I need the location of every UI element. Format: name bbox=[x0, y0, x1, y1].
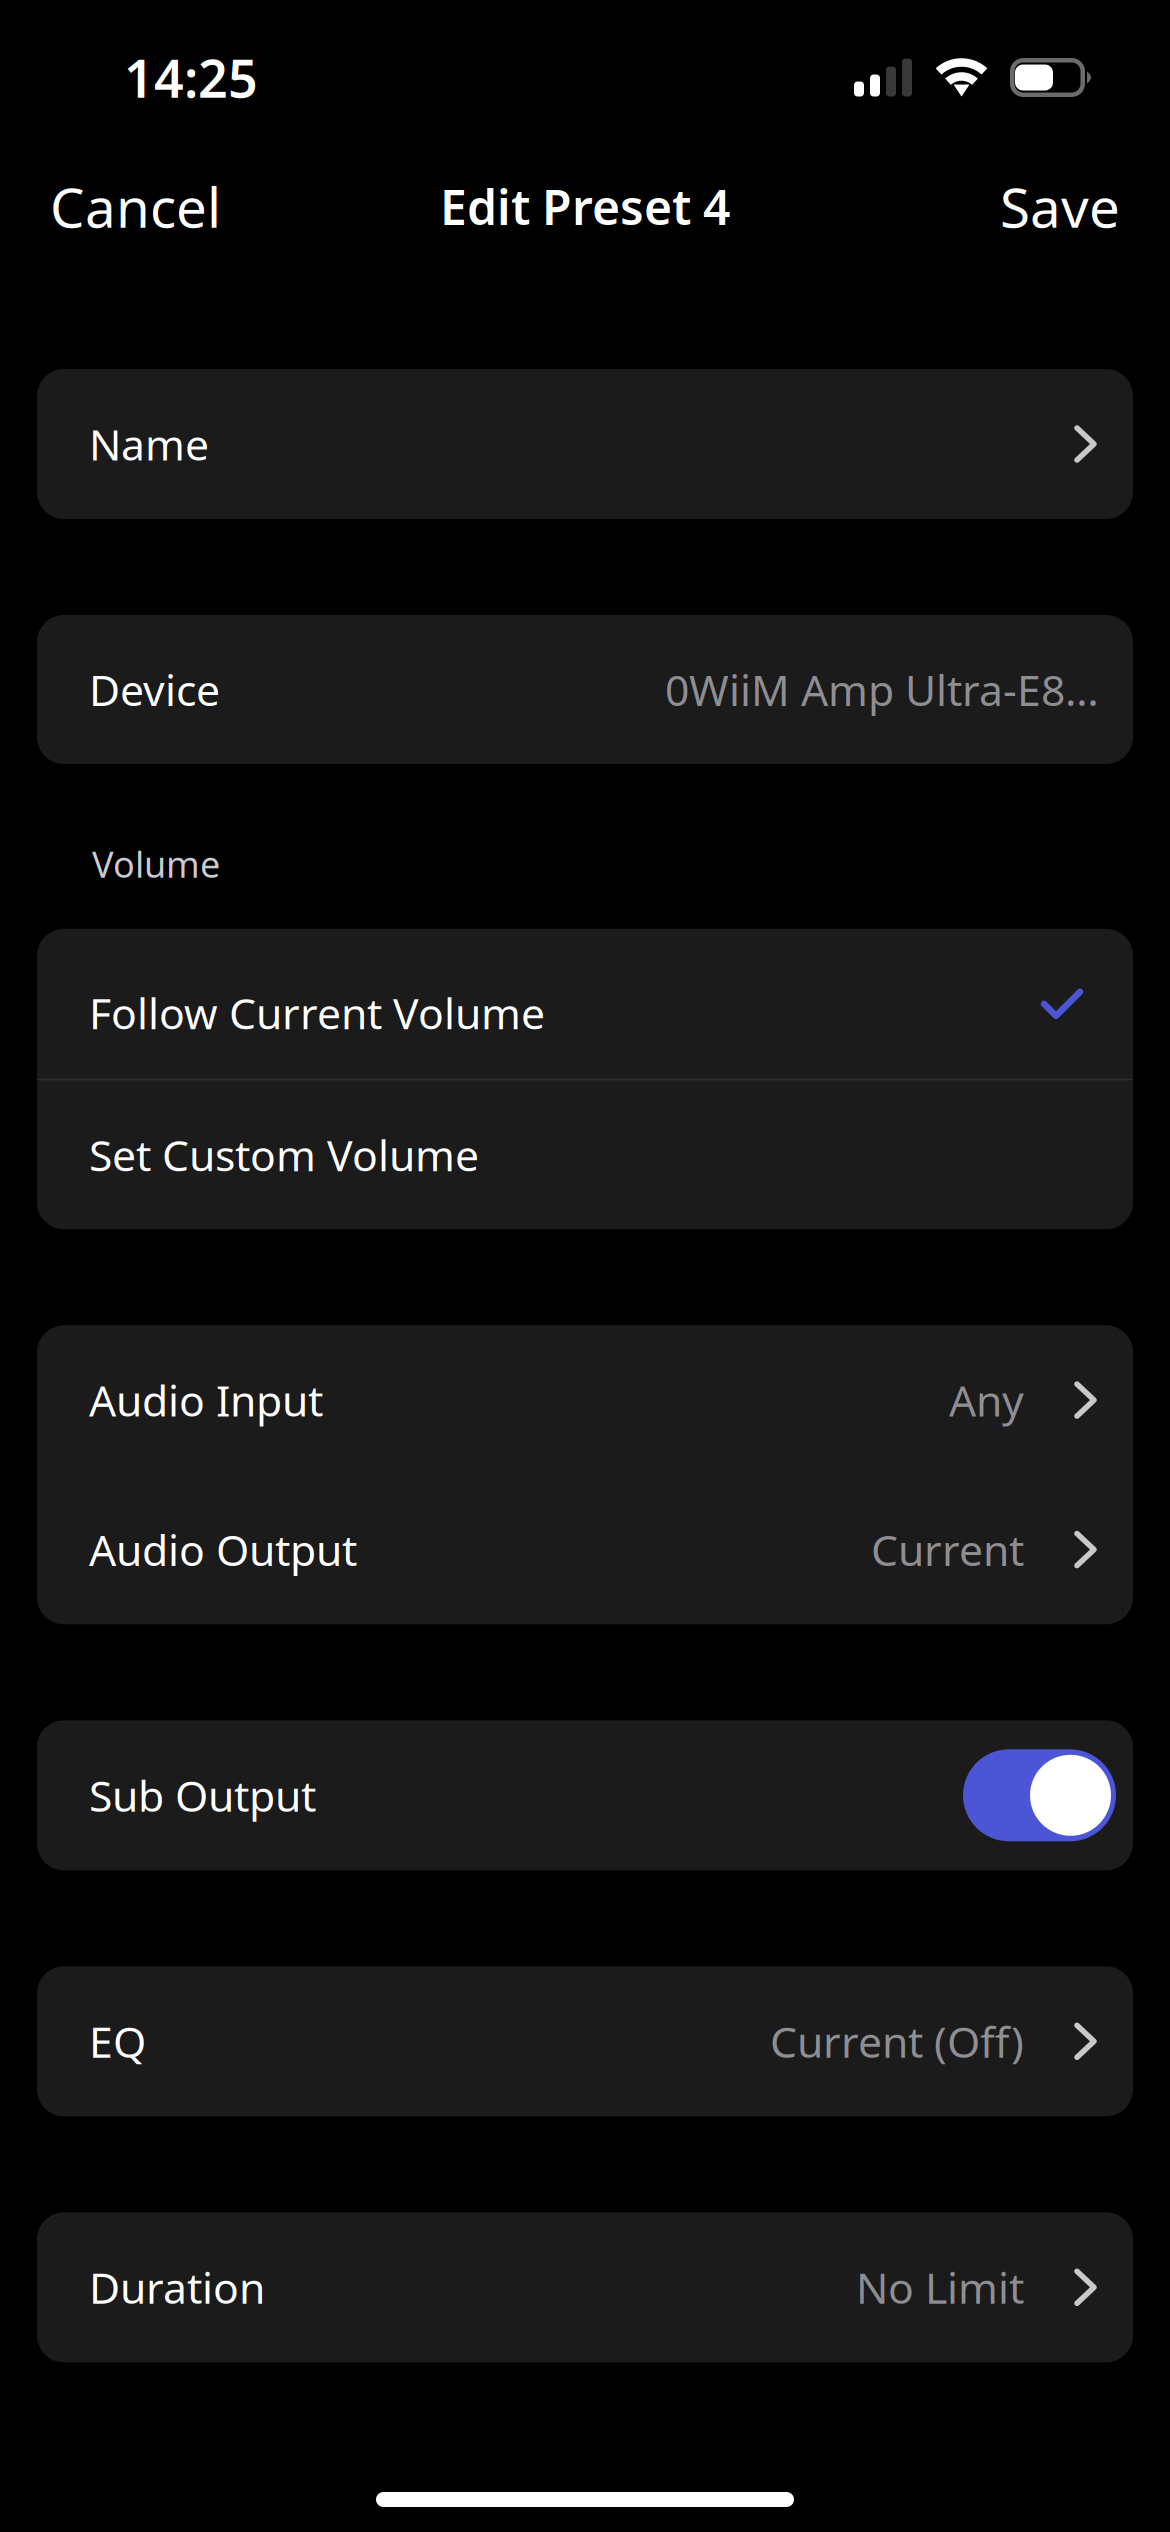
staticText: No Limit bbox=[856, 2259, 1024, 2316]
staticText: Edit Preset 4 bbox=[440, 175, 730, 238]
staticText: Follow Current Volume bbox=[89, 984, 545, 1041]
staticText: 0WiiM Amp Ultra-E8… bbox=[665, 661, 1099, 718]
staticText: Sub Output bbox=[89, 1767, 316, 1824]
staticText: Cancel bbox=[50, 170, 221, 243]
staticText: 14:25 bbox=[124, 43, 258, 112]
button[interactable]: Sub Output bbox=[37, 1720, 1133, 1870]
staticText: Set Custom Volume bbox=[89, 1126, 479, 1183]
button[interactable]: Name bbox=[37, 369, 1133, 519]
button[interactable]: Device bbox=[37, 615, 1133, 764]
button[interactable]: Duration bbox=[37, 2212, 1133, 2362]
staticText: Device bbox=[89, 661, 220, 718]
staticText: Audio Output bbox=[89, 1521, 357, 1578]
staticText: Audio Input bbox=[89, 1372, 323, 1428]
button[interactable]: Audio Output bbox=[37, 1475, 1133, 1624]
button[interactable]: Audio Input bbox=[37, 1325, 1133, 1475]
staticText: EQ bbox=[89, 2013, 146, 2070]
staticText: Volume bbox=[92, 840, 220, 888]
staticText: Current (Off) bbox=[770, 2013, 1024, 2070]
button[interactable]: Set Custom Volume bbox=[37, 1080, 1133, 1229]
button[interactable]: Follow Current Volume bbox=[37, 929, 1133, 1079]
button[interactable]: Cancel bbox=[36, 154, 235, 259]
staticText: Name bbox=[89, 416, 209, 472]
button[interactable]: Save bbox=[986, 154, 1134, 259]
button[interactable]: EQ bbox=[37, 1966, 1133, 2116]
staticText: Any bbox=[949, 1372, 1024, 1428]
staticText: Current bbox=[871, 1521, 1024, 1578]
staticText: Duration bbox=[89, 2259, 265, 2316]
staticText: Save bbox=[1000, 170, 1120, 243]
